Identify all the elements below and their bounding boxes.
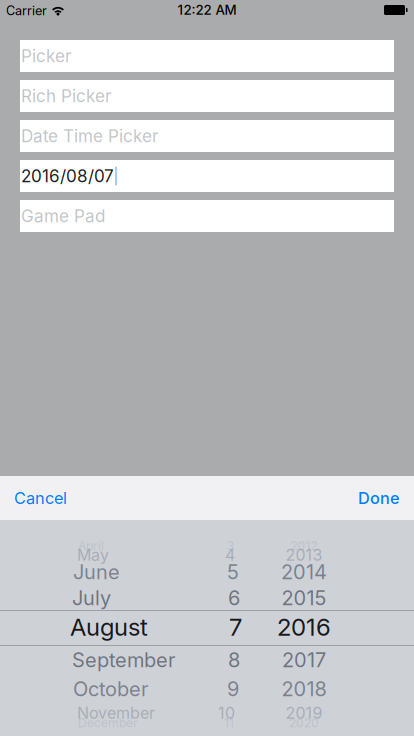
staticText: 11 bbox=[224, 716, 234, 730]
staticText: Picker bbox=[21, 46, 71, 66]
staticText: 4 bbox=[225, 545, 235, 565]
staticText: Date Time Picker bbox=[21, 126, 158, 146]
staticText: 5 bbox=[227, 560, 239, 584]
staticText: December bbox=[78, 716, 138, 730]
staticText: 6 bbox=[228, 586, 240, 610]
staticText: 9 bbox=[227, 677, 239, 701]
staticText: 2014 bbox=[281, 560, 327, 584]
staticText: May bbox=[77, 545, 109, 565]
staticText: 2013 bbox=[285, 545, 322, 565]
staticText: Game Pad bbox=[21, 206, 105, 226]
staticText: 2012 bbox=[290, 539, 317, 553]
staticText: 8 bbox=[228, 648, 240, 672]
staticText: 12:22 AM bbox=[177, 2, 236, 18]
staticText: 2016/08/07 bbox=[21, 166, 114, 186]
staticText: June bbox=[73, 560, 120, 584]
staticText: September bbox=[72, 648, 175, 672]
staticText: 2015 bbox=[281, 586, 326, 610]
staticText: Done bbox=[358, 488, 400, 508]
staticText: October bbox=[73, 677, 148, 701]
staticText: 2019 bbox=[285, 703, 322, 723]
staticText: April bbox=[78, 539, 104, 553]
staticText: Rich Picker bbox=[21, 86, 111, 106]
staticText: 10 bbox=[218, 703, 235, 723]
staticText: November bbox=[77, 703, 155, 723]
button[interactable]: Cancel bbox=[0, 476, 81, 520]
staticText: 2020 bbox=[289, 716, 319, 730]
staticText: 2016 bbox=[277, 612, 331, 641]
button[interactable]: Done bbox=[344, 476, 414, 520]
staticText: 2018 bbox=[281, 677, 326, 701]
staticText: August bbox=[70, 612, 148, 641]
staticText: 2017 bbox=[282, 648, 326, 672]
staticText: Cancel bbox=[14, 488, 67, 508]
staticText: 7 bbox=[229, 612, 242, 641]
staticText: Carrier bbox=[6, 3, 47, 18]
staticText: July bbox=[72, 586, 111, 610]
staticText: 3 bbox=[227, 539, 234, 553]
